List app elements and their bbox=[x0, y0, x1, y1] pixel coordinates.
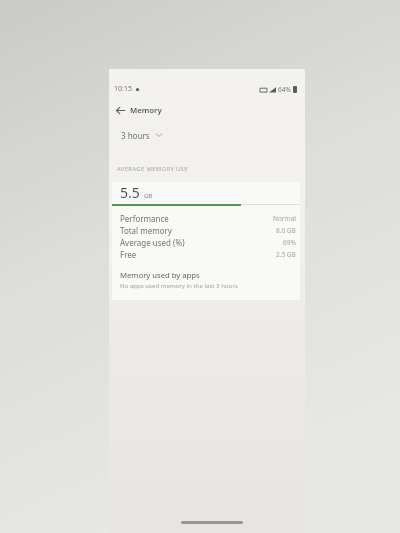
staticText: Performance bbox=[120, 213, 169, 224]
staticText: Memory bbox=[130, 105, 162, 116]
staticText: 3 hours bbox=[121, 130, 150, 141]
staticText: AVERAGE MEMORY USE bbox=[117, 165, 188, 173]
staticText: No apps used memory in the last 3 hours bbox=[120, 281, 238, 289]
button[interactable]: Home bbox=[181, 521, 243, 524]
staticText: Free bbox=[120, 249, 137, 260]
staticText: Average used (%) bbox=[120, 237, 185, 248]
button[interactable]: Performance bbox=[120, 212, 296, 224]
staticText: GB bbox=[144, 192, 153, 200]
staticText: 8.0 GB bbox=[276, 226, 296, 235]
button[interactable]: Total memory bbox=[120, 224, 296, 236]
staticText: 5.5 bbox=[120, 183, 140, 202]
staticText: 69% bbox=[283, 238, 296, 247]
staticText: Normal bbox=[273, 214, 296, 223]
staticText: 2.5 GB bbox=[276, 250, 296, 259]
staticText: 10:15 bbox=[114, 84, 132, 94]
button[interactable]: 3 hours bbox=[121, 123, 308, 147]
button[interactable]: Average used (%) bbox=[120, 236, 296, 248]
button[interactable]: Back bbox=[112, 102, 129, 119]
button[interactable]: Free bbox=[120, 248, 296, 260]
staticText: 64% bbox=[278, 85, 291, 94]
staticText: Total memory bbox=[120, 225, 172, 236]
button[interactable]: Memory used by apps bbox=[120, 270, 200, 280]
